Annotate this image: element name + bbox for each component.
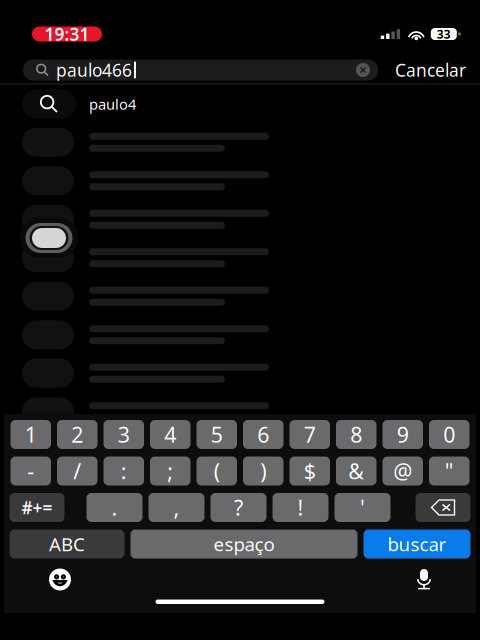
staticText: 5	[211, 420, 223, 449]
staticText: &	[348, 457, 364, 485]
button[interactable]: Cancelar	[378, 58, 480, 82]
button[interactable]: :	[103, 456, 144, 485]
button[interactable]: /	[57, 456, 97, 485]
button[interactable]: ?	[210, 493, 266, 522]
button[interactable]: @	[382, 456, 423, 485]
staticText: 2	[71, 420, 83, 449]
button[interactable]: $	[289, 456, 330, 485]
staticText: espaço	[213, 532, 274, 556]
staticText: 7	[304, 420, 316, 449]
button[interactable]: 3	[103, 420, 144, 449]
staticText: -	[27, 457, 34, 485]
button[interactable]: (	[196, 456, 237, 485]
button[interactable]: .	[86, 493, 142, 522]
button[interactable]: 7	[289, 420, 330, 449]
staticText: 33	[437, 26, 451, 42]
staticText: ,	[173, 493, 179, 522]
staticText: :	[121, 457, 127, 485]
button[interactable]: Dictation	[415, 569, 476, 590]
staticText: 3	[118, 420, 130, 449]
button[interactable]: 4	[150, 420, 190, 449]
staticText: ?	[234, 493, 243, 522]
button[interactable]: paulo466	[0, 59, 378, 80]
staticText: paulo466	[56, 58, 132, 81]
staticText: "	[445, 457, 454, 485]
button[interactable]: 0	[429, 420, 469, 449]
button[interactable]: 8	[336, 420, 376, 449]
button[interactable]: 9	[382, 420, 423, 449]
button[interactable]: 5	[196, 420, 237, 449]
staticText: 0	[443, 420, 455, 449]
staticText: 1	[25, 420, 37, 449]
button[interactable]: 1	[10, 420, 51, 449]
button[interactable]: ABC	[9, 529, 124, 558]
staticText: )	[260, 457, 266, 485]
staticText: 8	[350, 420, 362, 449]
button[interactable]: espaço	[130, 529, 357, 558]
staticText: 9	[397, 420, 409, 449]
button[interactable]: #+=	[9, 493, 64, 522]
button[interactable]: )	[243, 456, 283, 485]
staticText: @	[393, 457, 412, 485]
staticText: Cancelar	[395, 58, 466, 81]
staticText: $	[304, 457, 316, 485]
staticText: #+=	[21, 496, 52, 519]
button[interactable]: Emoji keyboard	[4, 568, 71, 590]
staticText: 19:31	[44, 22, 89, 45]
button[interactable]: 6	[243, 420, 283, 449]
button[interactable]: &	[336, 456, 376, 485]
staticText: (	[214, 457, 220, 485]
button[interactable]: -	[10, 456, 51, 485]
staticText: 6	[257, 420, 269, 449]
button[interactable]: '	[334, 493, 390, 522]
staticText: paulo4	[89, 94, 136, 114]
button[interactable]: ;	[150, 456, 190, 485]
button[interactable]: 2	[57, 420, 97, 449]
button[interactable]: paulo4	[0, 85, 480, 123]
staticText: ABC	[49, 532, 85, 556]
button[interactable]: ,	[148, 493, 204, 522]
staticText: /	[73, 457, 81, 485]
button[interactable]: buscar	[363, 529, 470, 558]
button[interactable]: !	[272, 493, 328, 522]
button[interactable]: "	[429, 456, 469, 485]
staticText: buscar	[387, 532, 446, 556]
staticText: !	[297, 493, 303, 522]
button[interactable]: Backspace	[415, 493, 470, 522]
staticText: '	[360, 493, 365, 522]
staticText: 4	[164, 420, 176, 449]
staticText: ;	[167, 457, 173, 485]
staticText: .	[111, 493, 117, 522]
